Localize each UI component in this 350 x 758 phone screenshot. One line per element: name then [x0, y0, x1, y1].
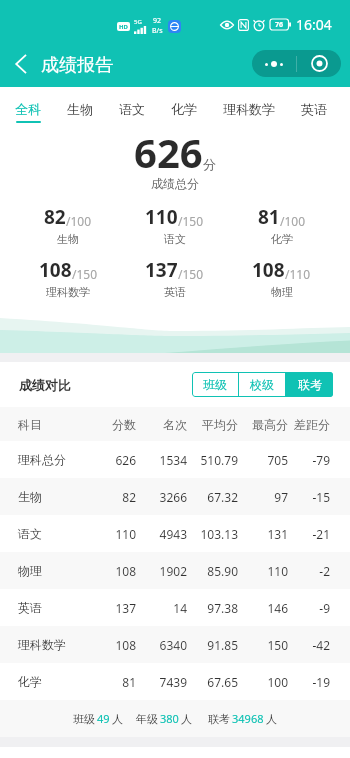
staticText: 16:04 — [296, 15, 332, 34]
staticText: 97.38 — [207, 600, 238, 616]
staticText: -19 — [312, 674, 330, 690]
staticText: 英语 — [164, 285, 186, 299]
staticText: HD — [119, 23, 128, 31]
staticText: 146 — [267, 600, 288, 616]
staticText: 班级 — [73, 712, 95, 726]
staticText: 49 — [97, 711, 110, 726]
staticText: 7439 — [159, 674, 187, 690]
staticText: 名次 — [163, 417, 187, 432]
staticText: 英语 — [18, 600, 42, 615]
button[interactable]: 全科 — [2, 87, 54, 128]
button[interactable]: 英语 — [288, 87, 340, 128]
staticText: 3266 — [159, 489, 187, 505]
staticText: 705 — [267, 452, 288, 468]
staticText: -2 — [319, 563, 330, 579]
button[interactable]: 联考 — [286, 372, 333, 397]
button[interactable]: More options — [252, 50, 296, 77]
button[interactable]: 生物 — [0, 478, 350, 515]
staticText: 年级 — [136, 712, 158, 726]
button[interactable]: 化学 — [0, 663, 350, 700]
staticText: -42 — [312, 637, 330, 653]
staticText: 化学 — [171, 101, 197, 117]
staticText: 150 — [267, 637, 288, 653]
staticText: 137 — [115, 600, 136, 616]
staticText: 85.90 — [207, 563, 238, 579]
staticText: 科目 — [18, 417, 42, 432]
staticText: 380 — [160, 711, 179, 726]
staticText: 76 — [275, 20, 284, 30]
staticText: 108 — [39, 257, 72, 283]
staticText: 生物 — [57, 232, 79, 246]
button[interactable]: 理科数学 — [210, 87, 288, 128]
button[interactable]: Close mini program — [297, 50, 341, 77]
staticText: 81 — [258, 204, 280, 230]
staticText: 97 — [274, 489, 288, 505]
staticText: /110 — [285, 266, 311, 282]
staticText: 英语 — [301, 101, 327, 117]
staticText: /150 — [72, 266, 98, 282]
staticText: 81 — [122, 674, 136, 690]
staticText: 108 — [115, 637, 136, 653]
button[interactable]: 化学 — [158, 87, 210, 128]
staticText: 理科数学 — [18, 637, 66, 652]
staticText: 物理 — [18, 563, 42, 578]
staticText: 82 — [122, 489, 136, 505]
staticText: 人 — [266, 712, 277, 726]
staticText: 5G — [134, 18, 142, 26]
staticText: 4943 — [159, 526, 187, 542]
staticText: 分 — [203, 156, 216, 172]
staticText: -79 — [312, 452, 330, 468]
staticText: 510.79 — [200, 452, 238, 468]
staticText: 成绩总分 — [151, 176, 199, 191]
staticText: 语文 — [18, 526, 42, 541]
staticText: 语文 — [164, 232, 186, 246]
staticText: 1534 — [159, 452, 187, 468]
staticText: B/s — [152, 26, 163, 36]
staticText: 108 — [115, 563, 136, 579]
staticText: 91.85 — [207, 637, 238, 653]
staticText: 82 — [44, 204, 66, 230]
staticText: 110 — [115, 526, 136, 542]
staticText: 34968 — [232, 711, 264, 726]
staticText: 626 — [115, 452, 136, 468]
staticText: /100 — [280, 213, 306, 229]
staticText: 成绩报告 — [41, 54, 113, 77]
button[interactable]: 语文 — [0, 515, 350, 552]
staticText: 成绩对比 — [19, 377, 71, 393]
staticText: 1902 — [159, 563, 187, 579]
button[interactable]: 理科总分 — [0, 441, 350, 478]
staticText: 108 — [252, 257, 285, 283]
staticText: /100 — [66, 213, 92, 229]
staticText: -9 — [319, 600, 330, 616]
staticText: 100 — [267, 674, 288, 690]
staticText: -15 — [312, 489, 330, 505]
staticText: 137 — [145, 257, 178, 283]
button[interactable]: 班级 — [192, 372, 238, 397]
staticText: 110 — [145, 204, 178, 230]
staticText: 67.65 — [207, 674, 238, 690]
staticText: 67.32 — [207, 489, 238, 505]
staticText: 110 — [267, 563, 288, 579]
staticText: 化学 — [271, 232, 293, 246]
staticText: /150 — [178, 213, 204, 229]
staticText: 626 — [134, 125, 203, 179]
button[interactable]: 科目 — [0, 407, 350, 441]
staticText: -21 — [312, 526, 330, 542]
staticText: 理科总分 — [18, 452, 66, 467]
staticText: 6340 — [159, 637, 187, 653]
button[interactable]: 理科数学 — [0, 626, 350, 663]
staticText: 人 — [181, 712, 192, 726]
staticText: 语文 — [119, 101, 145, 117]
button[interactable]: Back — [4, 41, 38, 87]
staticText: 理科数学 — [223, 101, 275, 117]
button[interactable]: 生物 — [54, 87, 106, 128]
staticText: 分数 — [112, 417, 136, 432]
button[interactable]: 语文 — [106, 87, 158, 128]
staticText: 联考 — [298, 377, 322, 392]
button[interactable]: 物理 — [0, 552, 350, 589]
staticText: 131 — [267, 526, 288, 542]
button[interactable]: 校级 — [239, 372, 285, 397]
staticText: 最高分 — [252, 417, 288, 432]
button[interactable]: 英语 — [0, 589, 350, 626]
staticText: 生物 — [18, 489, 42, 504]
